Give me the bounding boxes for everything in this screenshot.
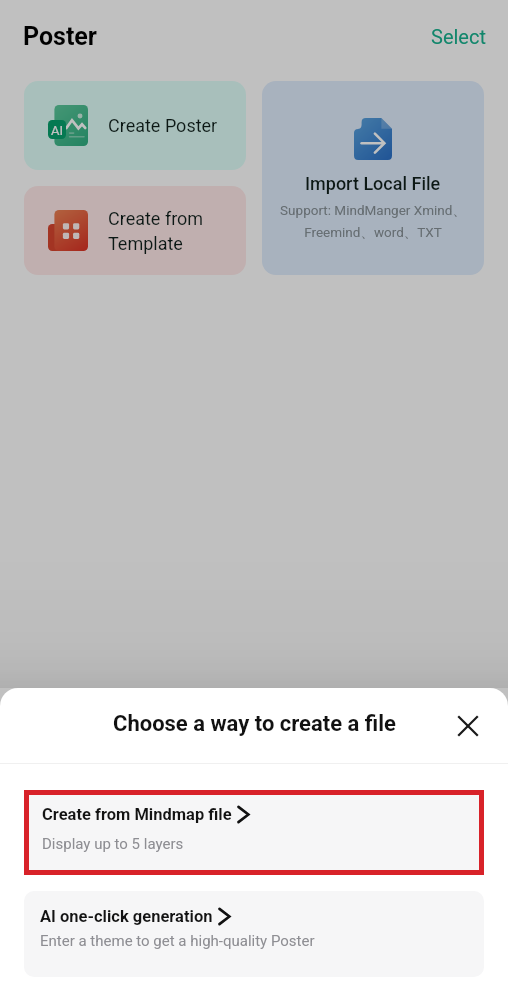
staticText: Support: MindManger Xmind、 Freemind、word… <box>280 202 466 241</box>
staticText: Select <box>431 25 486 48</box>
staticText: Choose a way to create a file <box>113 711 396 737</box>
button[interactable]: AI <box>24 81 246 170</box>
staticText: Create Poster <box>108 115 218 136</box>
staticText: AI <box>51 123 64 138</box>
staticText: Enter a theme to get a high-quality Post… <box>40 932 315 950</box>
staticText: Create from Mindmap file <box>42 805 232 824</box>
button[interactable]: Select <box>407 15 508 58</box>
staticText: Poster <box>23 22 98 51</box>
staticText: Import Local File <box>305 173 441 194</box>
button[interactable]: Create from Mindmap file <box>29 795 479 870</box>
button[interactable]: AI one-click generation <box>24 891 484 977</box>
staticText: Display up to 5 layers <box>42 835 184 853</box>
staticText: AI one-click generation <box>40 907 213 926</box>
staticText: Create from Template <box>108 208 204 254</box>
button[interactable]: Import Local File <box>262 81 484 275</box>
button[interactable]: Create from Template <box>24 186 246 275</box>
button[interactable]: Close <box>451 709 485 743</box>
